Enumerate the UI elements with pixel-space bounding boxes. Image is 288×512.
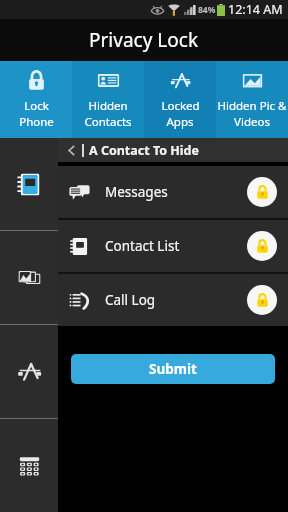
staticText: 84% [198, 4, 216, 16]
button[interactable]: Hidden contacts [0, 138, 58, 230]
button[interactable]: Calculator [0, 419, 58, 512]
button[interactable]: Locked apps [0, 325, 58, 418]
staticText: Contacts [84, 114, 132, 130]
button[interactable]: Hidden [72, 61, 144, 138]
staticText: Phone [19, 114, 54, 130]
button[interactable]: Lock [247, 285, 277, 315]
button[interactable]: Call Log [58, 274, 288, 326]
staticText: Hidden [88, 98, 128, 114]
staticText: Privacy Lock [89, 27, 199, 53]
button[interactable]: Lock [247, 177, 277, 207]
staticText: A Contact To Hide [89, 142, 199, 159]
staticText: Locked [161, 98, 200, 114]
staticText: Messages [105, 183, 168, 201]
button[interactable]: Contact List [58, 220, 288, 272]
button[interactable]: Submit [71, 354, 275, 384]
staticText: Lock [24, 98, 49, 114]
button[interactable]: Hidden pictures [0, 231, 58, 324]
staticText: Contact List [105, 237, 180, 255]
button[interactable]: Hidden Pic & [216, 61, 288, 138]
button[interactable]: Lock [247, 231, 277, 261]
staticText: Submit [149, 360, 197, 378]
button[interactable]: Messages [58, 166, 288, 218]
button[interactable]: Locked [144, 61, 216, 138]
staticText: Apps [166, 114, 194, 130]
staticText: Call Log [105, 291, 156, 309]
staticText: 12:14 AM [228, 1, 283, 18]
button[interactable]: Lock [0, 61, 72, 138]
staticText: Videos [234, 114, 270, 130]
staticText: Hidden Pic & [217, 98, 287, 114]
button[interactable]: Back [64, 143, 79, 158]
